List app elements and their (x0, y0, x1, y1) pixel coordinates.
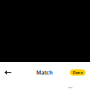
button[interactable]: Back (3, 67, 14, 78)
staticText: Done (73, 70, 83, 75)
staticText: Match (36, 69, 52, 76)
button[interactable]: Done (70, 69, 85, 76)
